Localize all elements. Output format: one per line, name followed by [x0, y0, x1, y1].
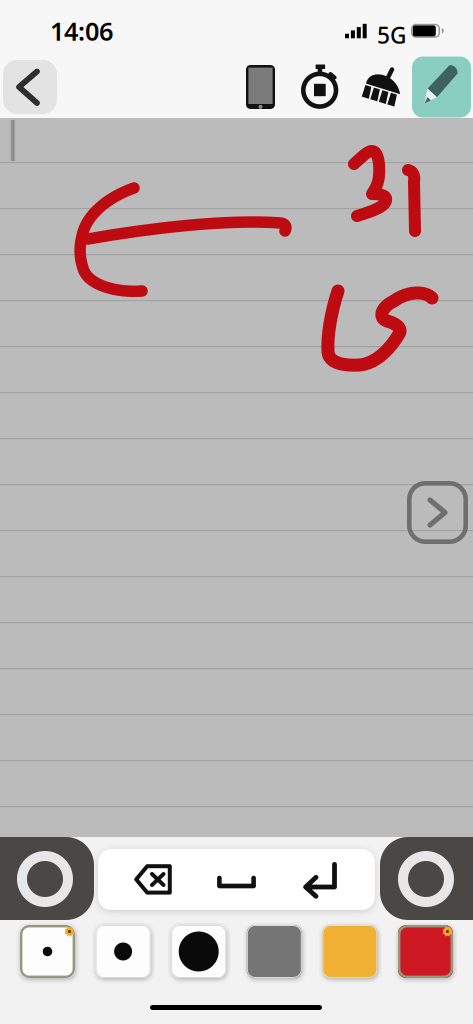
button[interactable]: Pen preset	[96, 925, 151, 978]
button[interactable]: Scroll down	[380, 837, 473, 920]
staticText: 14:06	[50, 14, 113, 48]
staticText: 5G	[377, 20, 406, 50]
button[interactable]: Pen preset	[171, 925, 226, 978]
button[interactable]: Return	[290, 849, 350, 910]
button[interactable]: Erase all	[360, 65, 402, 109]
button[interactable]: Pen preset	[20, 925, 75, 978]
button[interactable]: Device	[246, 65, 275, 109]
button[interactable]: Pen preset	[398, 925, 453, 978]
button[interactable]: Stopwatch	[301, 64, 339, 109]
button[interactable]: Pen preset	[247, 925, 302, 978]
button[interactable]: Back	[3, 60, 57, 114]
button[interactable]: Pen preset	[322, 925, 377, 978]
button[interactable]: Scroll up	[0, 837, 94, 920]
button[interactable]: Space	[207, 850, 266, 906]
button[interactable]: Delete	[121, 851, 185, 908]
button[interactable]: Next line	[407, 481, 468, 544]
button[interactable]: Pen	[412, 56, 471, 117]
